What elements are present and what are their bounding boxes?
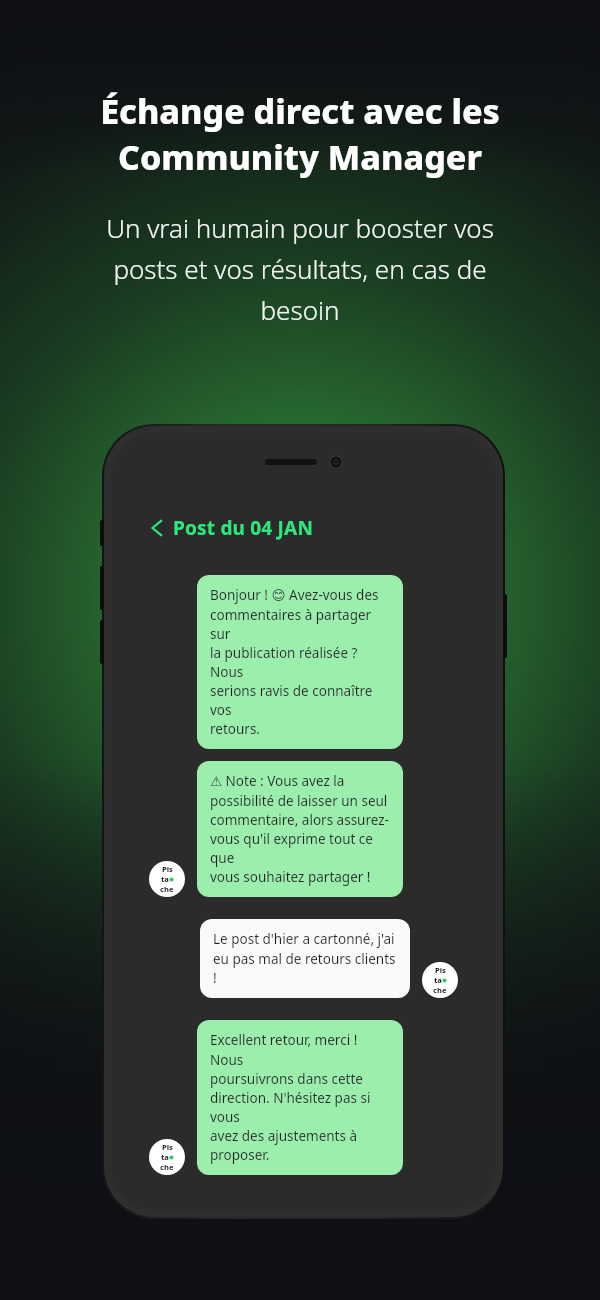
- staticText: che: [160, 884, 174, 894]
- other: Pistache logo: [149, 861, 185, 897]
- other: Pistache logo: [422, 962, 458, 998]
- button[interactable]: Back: [149, 511, 316, 545]
- button[interactable]: Le post d'hier a cartonné, j'ai eu pas m…: [200, 919, 410, 998]
- button[interactable]: Bonjour ! 😊 Avez-vous des commentaires à…: [197, 575, 403, 749]
- button[interactable]: Excellent retour, merci ! Nous poursuivr…: [197, 1020, 403, 1175]
- staticText: che: [433, 985, 447, 995]
- staticText: Bonjour ! 😊 Avez-vous des commentaires à…: [210, 586, 390, 738]
- staticText: Échange direct avec les Community Manage…: [36, 88, 564, 180]
- staticText: Pis: [162, 864, 173, 874]
- staticText: ta: [434, 975, 442, 985]
- staticText: che: [160, 1162, 174, 1172]
- staticText: Pis: [435, 965, 446, 975]
- staticText: ta: [161, 874, 169, 884]
- staticText: ta: [161, 1152, 169, 1162]
- staticText: Pis: [162, 1142, 173, 1152]
- staticText: Excellent retour, merci ! Nous poursuivr…: [210, 1031, 390, 1164]
- staticText: Post du 04 JAN: [173, 515, 314, 541]
- button[interactable]: ⚠️ Note : Vous avez la possibilité de la…: [197, 761, 403, 897]
- staticText: ⚠️ Note : Vous avez la possibilité de la…: [210, 772, 390, 886]
- other: Back: [151, 519, 163, 537]
- other: Pistache logo: [149, 1139, 185, 1175]
- staticText: Un vrai humain pour booster vos posts et…: [36, 210, 564, 328]
- staticText: Le post d'hier a cartonné, j'ai eu pas m…: [213, 930, 397, 987]
